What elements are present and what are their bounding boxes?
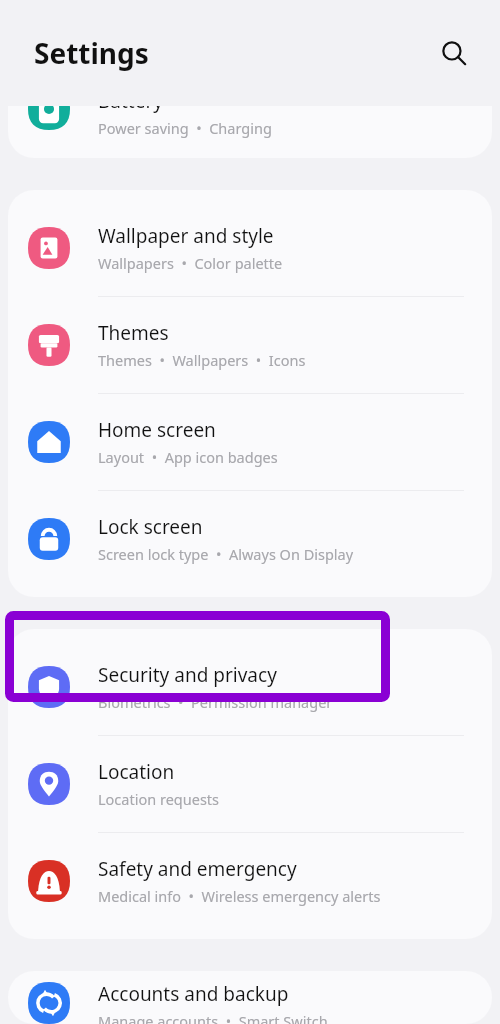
button[interactable]: Themes bbox=[8, 297, 492, 393]
staticText: Security and privacy bbox=[98, 662, 277, 688]
staticText: Home screen bbox=[98, 417, 216, 443]
staticText: Settings bbox=[34, 34, 149, 72]
button[interactable]: Location bbox=[8, 736, 492, 832]
staticText: Accounts and backup bbox=[98, 981, 289, 1007]
staticText: Themes • Wallpapers • Icons bbox=[98, 350, 306, 370]
staticText: Location bbox=[98, 759, 175, 785]
button[interactable]: Accounts and backup bbox=[8, 981, 492, 1024]
button[interactable]: Home screen bbox=[8, 394, 492, 490]
staticText: Location requests bbox=[98, 789, 220, 809]
button[interactable]: Search bbox=[432, 31, 476, 75]
staticText: Wallpapers • Color palette bbox=[98, 253, 283, 273]
staticText: Themes bbox=[98, 320, 169, 346]
staticText: Manage accounts • Smart Switch bbox=[98, 1011, 328, 1024]
button[interactable]: Security and privacy bbox=[8, 639, 492, 735]
staticText: Biometrics • Permission manager bbox=[98, 692, 333, 712]
staticText: Layout • App icon badges bbox=[98, 447, 278, 467]
staticText: Lock screen bbox=[98, 514, 203, 540]
staticText: Safety and emergency bbox=[98, 856, 297, 882]
button[interactable]: Lock screen bbox=[8, 491, 492, 587]
staticText: Power saving • Charging bbox=[98, 118, 272, 138]
staticText: Medical info • Wireless emergency alerts bbox=[98, 886, 381, 906]
staticText: Screen lock type • Always On Display bbox=[98, 544, 354, 564]
staticText: Wallpaper and style bbox=[98, 223, 274, 249]
button[interactable]: Battery bbox=[8, 106, 492, 158]
button[interactable]: Safety and emergency bbox=[8, 833, 492, 929]
staticText: Battery bbox=[98, 106, 163, 114]
button[interactable]: Wallpaper and style bbox=[8, 200, 492, 296]
